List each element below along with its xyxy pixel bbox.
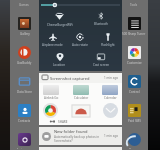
staticText: Contacts — [18, 119, 31, 123]
staticText: Paid SMS — [128, 119, 141, 123]
other: Flashlight — [104, 33, 112, 41]
staticText: Calendar — [104, 96, 117, 100]
other: CheeseBurgerWiFi — [55, 12, 64, 21]
other: Airplane mode — [49, 33, 57, 41]
button[interactable] — [103, 103, 118, 118]
staticText: GasBuddy — [17, 61, 32, 65]
staticText: 1 min ago — [104, 134, 119, 138]
staticText: Calculator — [74, 96, 89, 100]
staticText: Data Store — [17, 90, 32, 94]
staticText: Instagram — [17, 148, 32, 149]
button[interactable] — [71, 104, 91, 118]
staticText: Gallery — [20, 32, 30, 36]
button[interactable]: Bluetooth — [80, 11, 122, 27]
button[interactable]: Screenshot captured — [39, 73, 122, 125]
button[interactable]: Flashlight — [94, 32, 122, 48]
button[interactable]: Customize — [127, 44, 142, 66]
button[interactable]: 500 Sharp Tuner — [122, 15, 146, 37]
staticText: Browser — [129, 148, 141, 149]
other: Auto rotate — [76, 33, 84, 41]
button[interactable]: Location — [39, 52, 80, 68]
button[interactable]: Contacts — [17, 102, 32, 124]
staticText: SHARE — [58, 120, 68, 123]
staticText: Games — [19, 3, 29, 7]
button[interactable]: GasBuddy — [17, 44, 32, 66]
staticText: Screenshot captured — [50, 76, 104, 81]
button[interactable]: Auto rotate — [66, 32, 94, 48]
button[interactable]: Cast screen — [80, 52, 122, 68]
button[interactable]: Share — [49, 120, 56, 123]
staticText: Flashlight — [101, 43, 115, 47]
button[interactable]: Airplane mode — [39, 32, 66, 48]
button[interactable]: Airbnb Go — [43, 85, 59, 100]
button[interactable] — [43, 103, 58, 118]
button[interactable]: Control — [127, 73, 142, 95]
button[interactable]: New folder found — [39, 127, 122, 145]
button[interactable]: Paid SMS — [127, 102, 142, 124]
staticText: 500 Sharp Tuner — [122, 32, 146, 36]
button[interactable]: Browser — [127, 131, 142, 150]
staticText: CheeseBurgerWiFi — [47, 23, 73, 27]
staticText: Airbnb Go — [44, 96, 59, 100]
other: Cast screen — [97, 53, 105, 61]
button[interactable]: Calendar — [102, 85, 118, 100]
staticText: Tools — [130, 3, 138, 7]
button[interactable]: Instagram — [17, 131, 32, 150]
button[interactable]: CheeseBurgerWiFi — [39, 11, 80, 28]
staticText: Cast screen — [93, 63, 110, 67]
button[interactable]: Gallery — [17, 15, 32, 37]
staticText: Auto rotate — [72, 43, 88, 47]
button[interactable]: Data Store — [17, 73, 32, 95]
staticText: Customize — [127, 61, 142, 65]
button[interactable]: Brightness — [39, 0, 122, 9]
staticText: Automatically back up photos in Screensh… — [54, 135, 104, 143]
other: Bluetooth — [97, 12, 105, 20]
staticText: Bluetooth — [94, 22, 108, 26]
staticText: Airplane mode — [42, 43, 63, 47]
staticText: New folder found — [54, 129, 88, 134]
staticText: 1 min ago — [104, 76, 119, 80]
staticText: Location — [53, 63, 66, 67]
staticText: Control — [129, 90, 140, 94]
button[interactable]: Calculator — [73, 85, 89, 100]
other: Location — [56, 53, 64, 61]
